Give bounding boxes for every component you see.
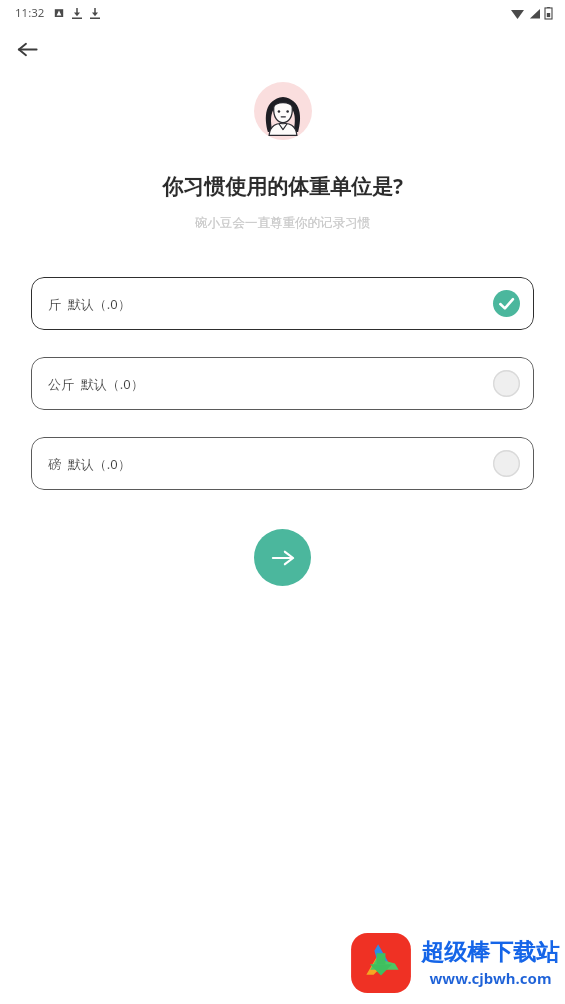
- button[interactable]: 公斤 默认（.0）: [31, 357, 534, 410]
- button[interactable]: 斤 默认（.0）: [31, 277, 534, 330]
- staticText: www.cjbwh.com: [429, 968, 552, 988]
- button[interactable]: Next: [254, 529, 311, 586]
- staticText: 超级棒下载站: [421, 938, 559, 967]
- button[interactable]: Back: [8, 30, 46, 68]
- staticText: 你习惯使用的体重单位是?: [0, 172, 565, 201]
- staticText: 公斤 默认（.0）: [48, 375, 493, 393]
- staticText: 磅 默认（.0）: [48, 455, 493, 473]
- staticText: 11:32: [15, 5, 45, 21]
- staticText: 斤 默认（.0）: [48, 295, 493, 313]
- staticText: 碗小豆会一直尊重你的记录习惯: [0, 215, 565, 231]
- button[interactable]: 磅 默认（.0）: [31, 437, 534, 490]
